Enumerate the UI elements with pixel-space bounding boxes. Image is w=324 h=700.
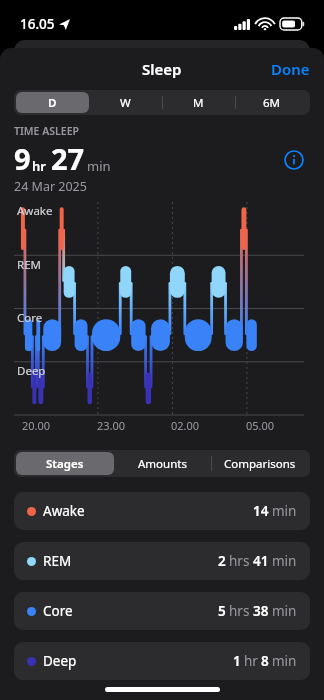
staticText: 6M: [263, 95, 281, 111]
staticText: 05.00: [246, 418, 275, 433]
staticText: 24 Mar 2025: [14, 178, 87, 195]
staticText: Core: [43, 602, 73, 620]
staticText: hrs: [229, 552, 250, 570]
button[interactable]: Core: [14, 592, 310, 630]
staticText: D: [48, 95, 57, 111]
staticText: hr: [32, 157, 46, 175]
button[interactable]: 6M: [235, 92, 308, 113]
staticText: min: [272, 552, 297, 570]
button[interactable]: Stages: [16, 452, 114, 475]
staticText: hr: [244, 652, 258, 670]
staticText: W: [120, 95, 131, 111]
staticText: 9: [14, 139, 31, 178]
staticText: TIME ASLEEP: [14, 124, 79, 138]
staticText: 38: [253, 602, 269, 620]
staticText: REM: [17, 257, 41, 273]
button[interactable]: W: [89, 92, 162, 113]
staticText: min: [272, 652, 297, 670]
staticText: 23.00: [97, 418, 126, 433]
staticText: Comparisons: [224, 456, 296, 472]
staticText: Core: [17, 310, 43, 326]
staticText: 02.00: [171, 418, 200, 433]
staticText: Sleep: [142, 59, 182, 79]
staticText: 41: [253, 552, 269, 570]
button[interactable]: D: [16, 92, 89, 113]
button[interactable]: Awake: [14, 492, 310, 530]
staticText: 2: [218, 552, 226, 570]
staticText: 20.00: [22, 418, 51, 433]
staticText: Amounts: [138, 456, 187, 472]
staticText: 14: [253, 502, 269, 520]
button[interactable]: M: [162, 92, 235, 113]
staticText: 5: [218, 602, 226, 620]
staticText: Deep: [43, 652, 77, 670]
staticText: Deep: [17, 363, 46, 379]
button[interactable]: Information: [278, 144, 310, 176]
staticText: 8: [261, 652, 269, 670]
staticText: 27: [51, 139, 85, 178]
staticText: min: [272, 602, 297, 620]
button[interactable]: Comparisons: [211, 452, 308, 475]
staticText: 1: [233, 652, 241, 670]
staticText: REM: [43, 552, 72, 570]
button[interactable]: REM: [14, 542, 310, 580]
staticText: Stages: [46, 456, 84, 472]
button[interactable]: Deep: [14, 642, 310, 680]
staticText: hrs: [229, 602, 250, 620]
staticText: min: [272, 502, 297, 520]
staticText: Awake: [43, 502, 85, 520]
button[interactable]: Done: [257, 49, 324, 89]
staticText: 16.05: [20, 15, 55, 33]
staticText: min: [87, 157, 111, 175]
staticText: M: [193, 95, 204, 111]
staticText: Done: [271, 59, 310, 79]
staticText: Awake: [17, 203, 53, 219]
button[interactable]: Amounts: [114, 452, 211, 475]
